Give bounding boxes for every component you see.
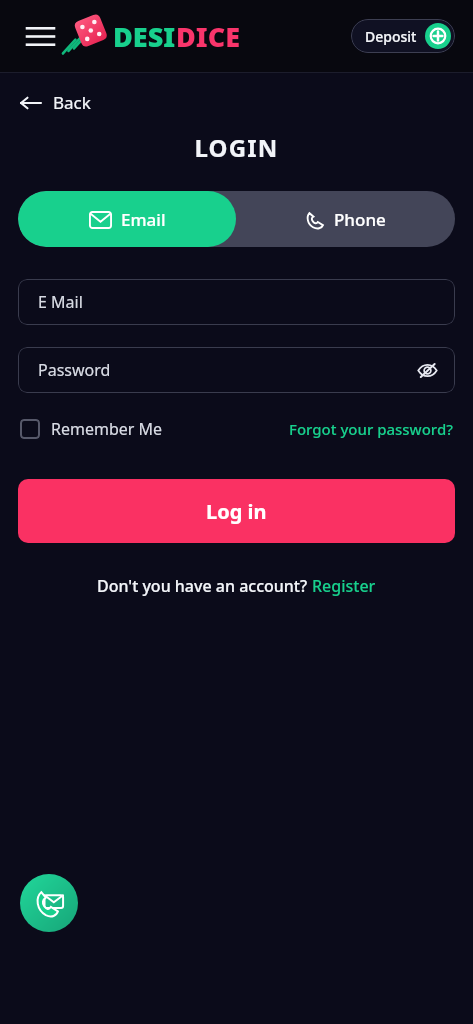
button[interactable]: Email xyxy=(18,191,236,247)
button[interactable]: Remember Me xyxy=(18,414,165,444)
staticText: E Mail xyxy=(38,291,83,313)
staticText: DESI xyxy=(113,18,176,55)
staticText: Remember Me xyxy=(51,418,163,440)
staticText: LOGIN xyxy=(0,131,473,164)
staticText: Phone xyxy=(334,208,386,231)
button[interactable]: E Mail xyxy=(18,279,455,325)
button[interactable]: Register xyxy=(312,575,376,597)
button[interactable]: Phone xyxy=(236,191,455,247)
staticText: Back xyxy=(53,91,91,114)
staticText: DICE xyxy=(176,18,241,55)
staticText: Deposit xyxy=(365,27,417,46)
button[interactable]: Forgot your password? xyxy=(287,415,455,443)
button[interactable]: Deposit xyxy=(351,19,455,53)
button[interactable]: Show password xyxy=(411,354,443,386)
button[interactable]: Contact support xyxy=(20,874,78,932)
staticText: Don't you have an account? xyxy=(97,575,312,597)
staticText: Email xyxy=(121,208,166,231)
staticText: Log in xyxy=(206,498,267,525)
button[interactable]: Back xyxy=(14,85,97,120)
button[interactable]: Password xyxy=(18,347,455,393)
staticText: Password xyxy=(38,359,111,381)
button[interactable]: Log in xyxy=(18,479,455,543)
button[interactable]: Menu xyxy=(20,16,60,56)
button[interactable]: DESI xyxy=(62,13,241,59)
